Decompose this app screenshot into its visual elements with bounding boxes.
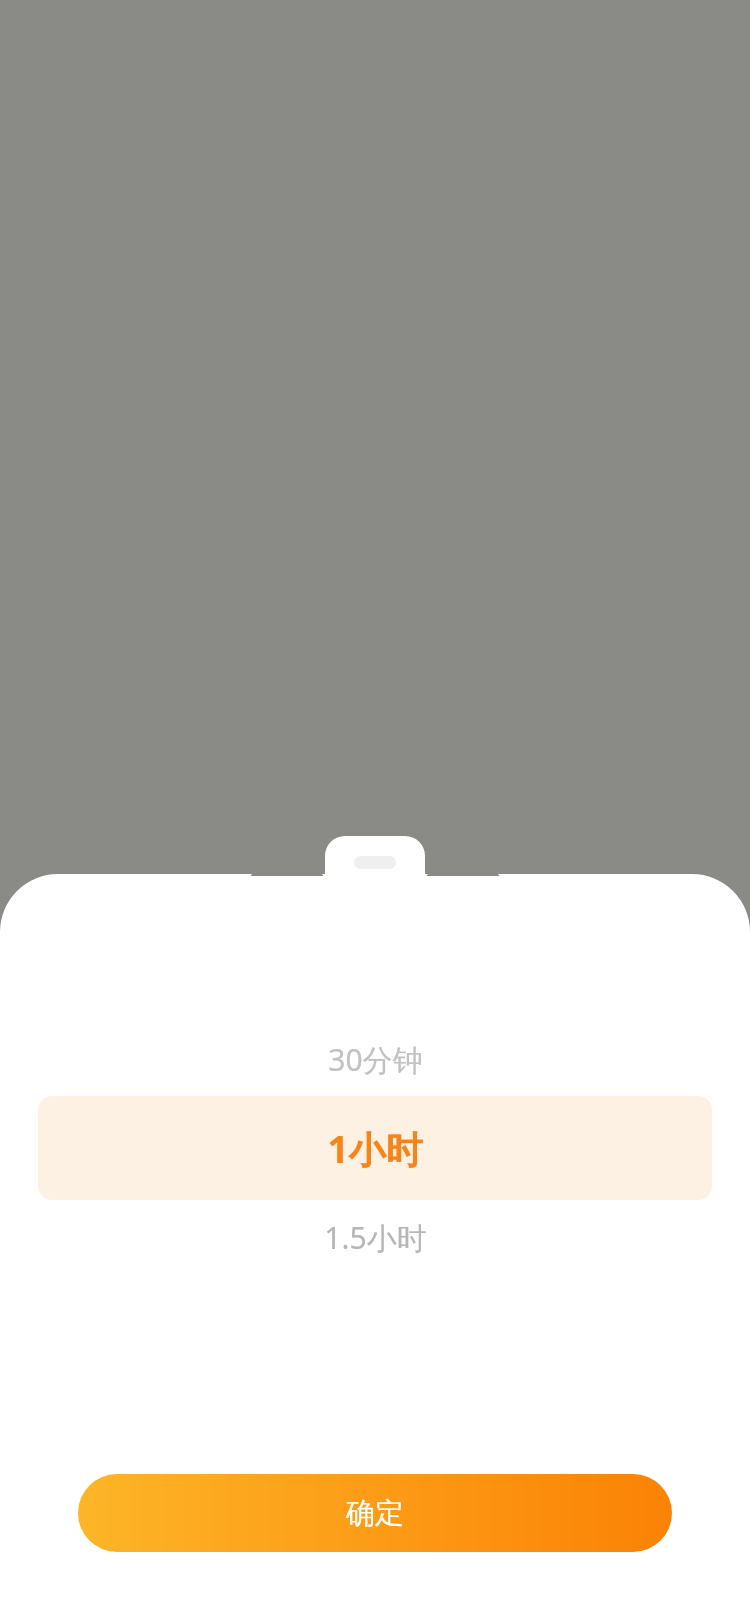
- staticText: 30分钟: [328, 1039, 423, 1080]
- button[interactable]: 1小时: [38, 1096, 712, 1200]
- staticText: 1.5小时: [324, 1217, 427, 1258]
- button[interactable]: 1.5小时: [0, 1208, 750, 1266]
- button[interactable]: 30分钟: [0, 1030, 750, 1088]
- staticText: 1小时: [327, 1123, 423, 1174]
- staticText: 确定: [346, 1495, 404, 1532]
- button[interactable]: 确定: [78, 1474, 672, 1552]
